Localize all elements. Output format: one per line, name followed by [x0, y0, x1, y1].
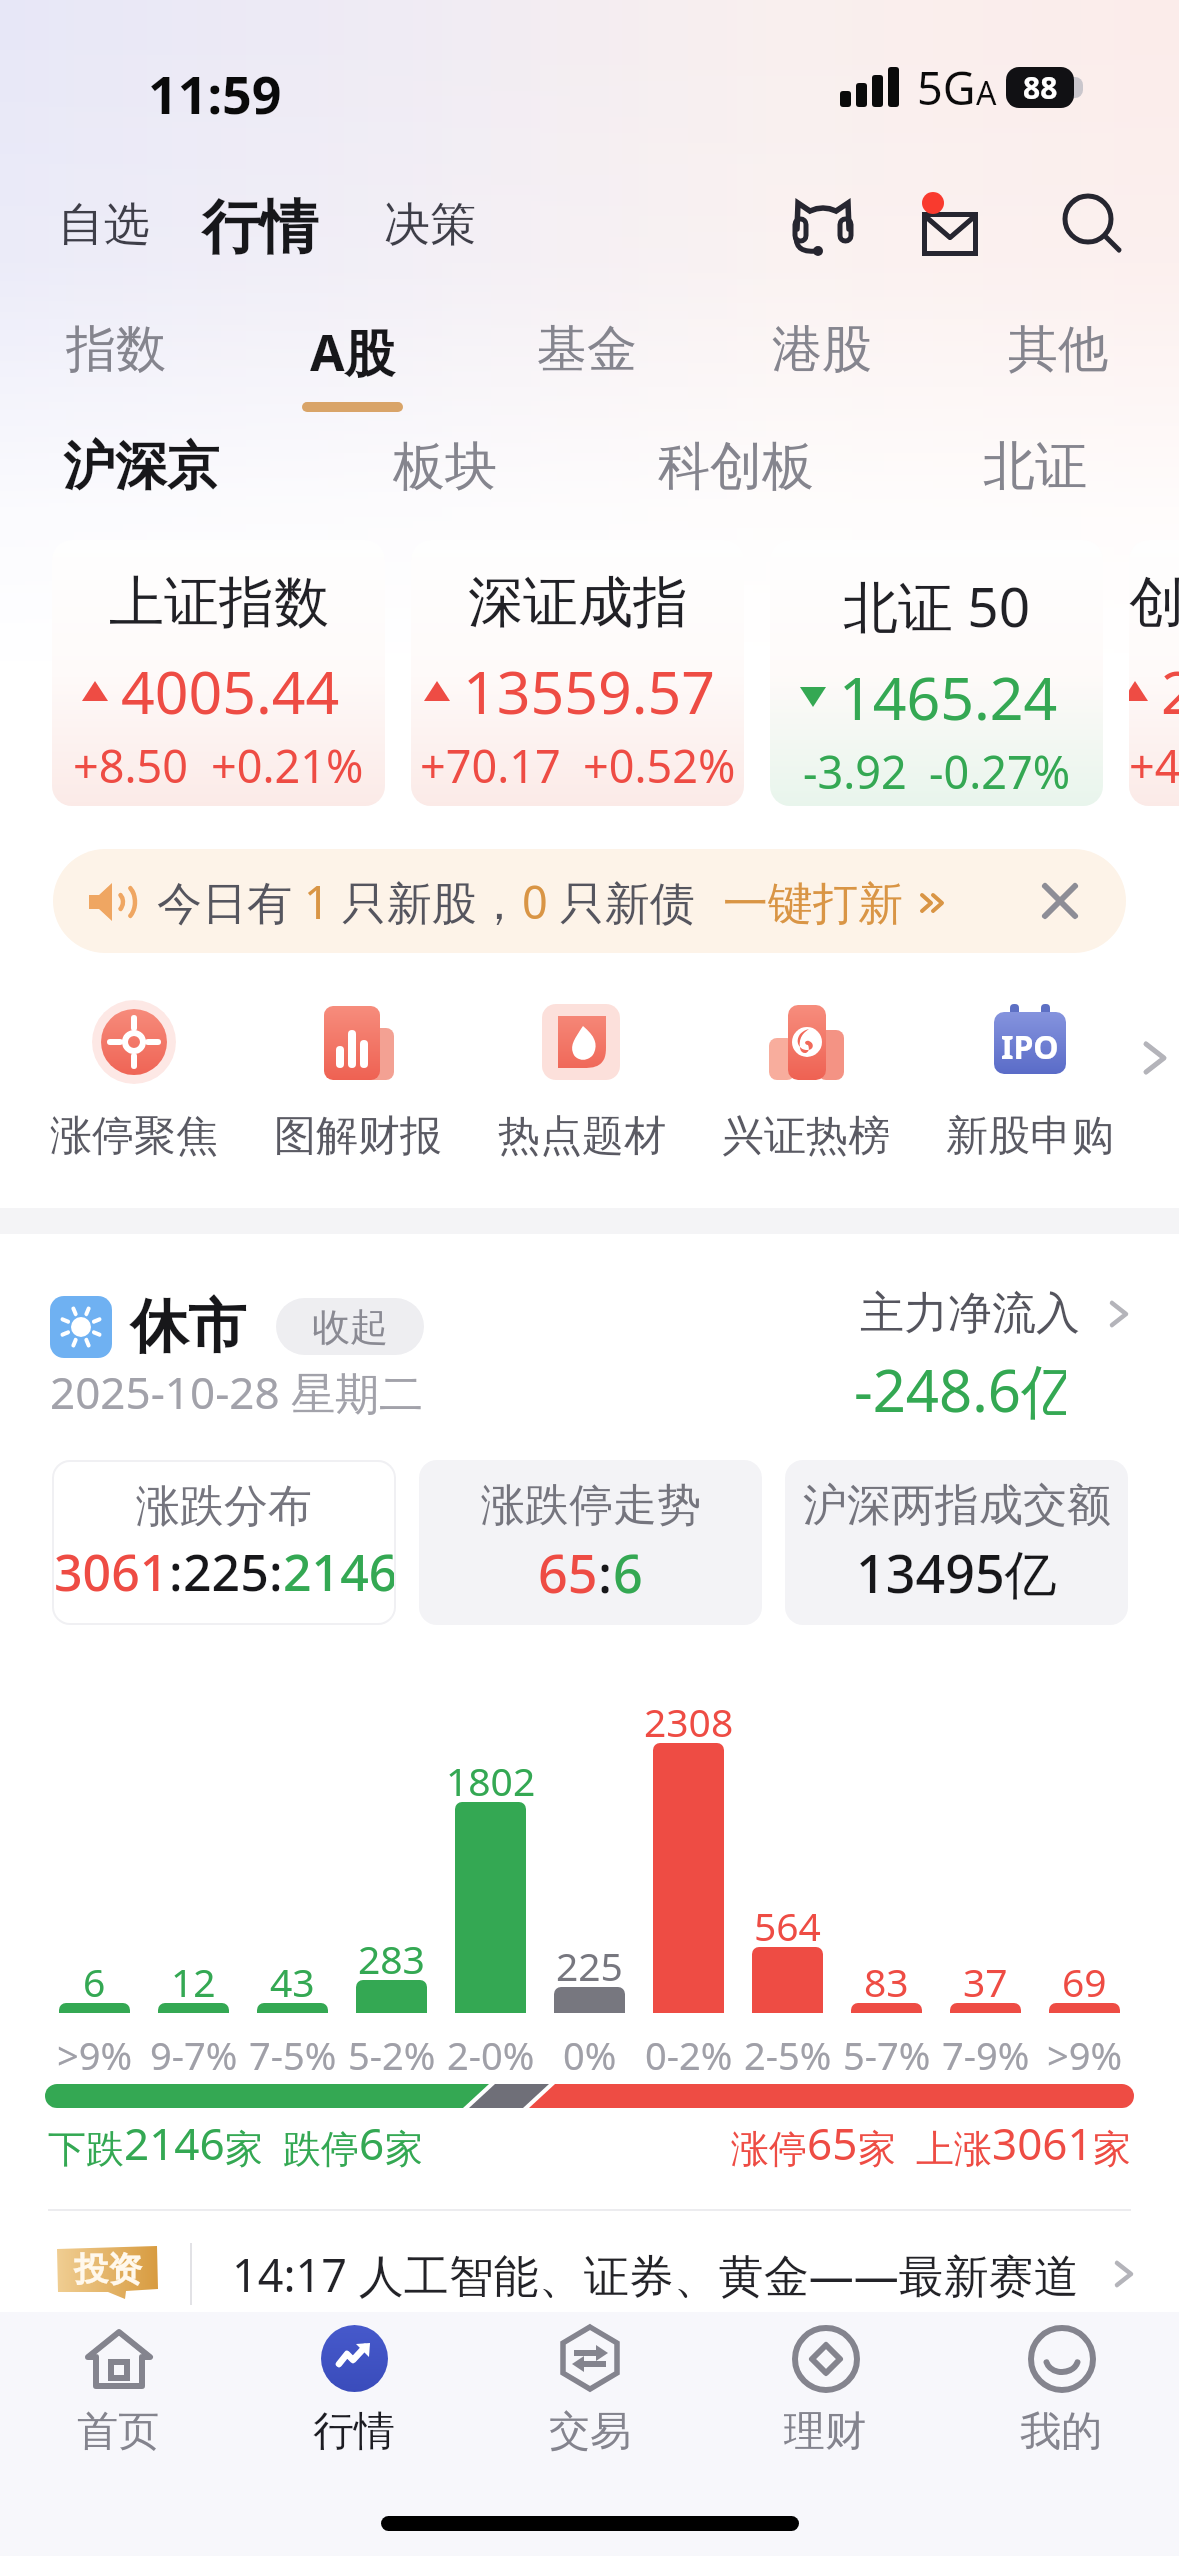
staticText: >9%	[1047, 2029, 1123, 2081]
staticText: 兴证热榜	[722, 1110, 890, 1163]
button[interactable]: 理财	[715, 2312, 935, 2452]
staticText: 6	[613, 1537, 643, 1608]
staticText: 行情	[202, 191, 318, 264]
button[interactable]: 我的	[951, 2312, 1171, 2452]
staticText: 2-5%	[744, 2029, 832, 2081]
staticText: 休市	[130, 1290, 246, 1363]
staticText: 65	[538, 1537, 598, 1608]
staticText: 83	[864, 1955, 909, 2008]
button[interactable]: A股	[262, 318, 442, 412]
button[interactable]: 收起	[276, 1298, 424, 1355]
staticText: 2308	[644, 1695, 734, 1748]
staticText: +0.52%	[583, 735, 736, 796]
staticText: 创业板指	[1129, 568, 1179, 637]
staticText: 5-7%	[843, 2029, 931, 2081]
staticText: 2-0%	[447, 2029, 535, 2081]
staticText: :	[269, 1538, 283, 1606]
button[interactable]: 港股	[732, 318, 912, 381]
staticText: 家	[1093, 2125, 1131, 2173]
staticText: 涨停	[731, 2125, 807, 2173]
button[interactable]: 决策	[372, 182, 488, 268]
button[interactable]: 沪深京	[57, 426, 225, 506]
button[interactable]: 交易	[480, 2312, 700, 2452]
staticText: 7-9%	[942, 2029, 1030, 2081]
button[interactable]: Customer service	[769, 173, 877, 281]
staticText: 热点题材	[498, 1110, 666, 1163]
staticText: 564	[754, 1899, 821, 1952]
staticText: 0-2%	[645, 2029, 733, 2081]
staticText: 1	[304, 871, 330, 932]
staticText: -0.27%	[929, 741, 1071, 802]
staticText: 沪深两指成交额	[803, 1478, 1111, 1533]
staticText: +70.17	[420, 735, 561, 796]
button[interactable]: 行情	[244, 2312, 464, 2452]
staticText: 3061	[992, 2113, 1093, 2173]
staticText: 板块	[393, 434, 497, 498]
staticText: 跌停	[283, 2125, 359, 2173]
staticText: 北证	[983, 434, 1087, 498]
staticText: 225	[556, 1939, 623, 1992]
staticText: 投资	[74, 2248, 142, 2291]
staticText: 225	[183, 1538, 269, 1606]
button[interactable]: 指数	[26, 318, 206, 381]
staticText: 88	[1023, 67, 1058, 108]
staticText: 科创板	[658, 434, 814, 498]
button[interactable]: 涨停聚焦	[24, 1000, 244, 1163]
button[interactable]: 科创板	[652, 426, 820, 506]
button[interactable]: 北证	[977, 426, 1093, 506]
staticText: 9-7%	[150, 2029, 238, 2081]
staticText: 14:17 人工智能、证券、黄金——最新赛道	[232, 2244, 1079, 2305]
staticText: 5-2%	[348, 2029, 436, 2081]
staticText: 6	[83, 1955, 106, 2008]
staticText: 3061	[54, 1538, 169, 1606]
button[interactable]: 今日有	[53, 849, 1126, 953]
staticText: +0.21%	[211, 735, 364, 796]
staticText: 其他	[1008, 318, 1108, 381]
staticText: 7-5%	[249, 2029, 337, 2081]
staticText: 决策	[384, 196, 476, 254]
button[interactable]: Close	[1034, 875, 1086, 927]
staticText: 1465.24	[839, 657, 1058, 737]
button[interactable]: 北证 50	[770, 540, 1103, 806]
button[interactable]: 主力净流入	[860, 1286, 1136, 1341]
staticText: 主力净流入	[860, 1286, 1080, 1341]
staticText: +4.12	[1129, 735, 1179, 796]
button[interactable]: 深证成指	[411, 540, 744, 806]
button[interactable]: 基金	[497, 318, 677, 381]
staticText: 指数	[66, 318, 166, 381]
button[interactable]: 涨跌停走势	[419, 1460, 762, 1625]
staticText: >9%	[57, 2029, 133, 2081]
button[interactable]: 自选	[46, 182, 162, 268]
staticText: 只新股，	[330, 871, 522, 932]
button[interactable]: 热点题材	[472, 1000, 692, 1163]
staticText: A	[976, 71, 997, 115]
button[interactable]: 板块	[387, 426, 503, 506]
staticText: 今日有	[157, 871, 304, 932]
button[interactable]: 涨跌分布	[54, 1462, 394, 1623]
staticText: 43	[270, 1955, 315, 2008]
button[interactable]: IPO	[920, 1000, 1140, 1163]
button[interactable]: 图解财报	[248, 1000, 468, 1163]
button[interactable]: Messages	[908, 171, 1016, 279]
staticText: 2146	[124, 2113, 225, 2173]
staticText: 13495亿	[856, 1537, 1057, 1608]
button[interactable]: 创业板指	[1129, 540, 1179, 806]
staticText: 北证 50	[843, 568, 1031, 643]
button[interactable]: 首页	[8, 2312, 228, 2452]
staticText: 69	[1062, 1955, 1107, 2008]
staticText: 涨跌分布	[136, 1479, 312, 1534]
staticText: 理财	[784, 2406, 866, 2452]
staticText: 家	[385, 2125, 423, 2173]
staticText: 4005.44	[121, 651, 340, 731]
staticText: 新股申购	[946, 1110, 1114, 1163]
button[interactable]: 行情	[190, 187, 330, 268]
staticText: 12	[171, 1955, 216, 2008]
button[interactable]: 上证指数	[52, 540, 385, 806]
button[interactable]: Search	[1040, 171, 1148, 279]
button[interactable]: 其他	[968, 318, 1148, 381]
button[interactable]: 沪深两指成交额	[785, 1460, 1128, 1625]
staticText: 图解财报	[274, 1110, 442, 1163]
staticText: 只新债	[548, 871, 695, 932]
button[interactable]: 兴证热榜	[696, 1000, 916, 1163]
button[interactable]: 投资	[0, 2232, 1179, 2316]
